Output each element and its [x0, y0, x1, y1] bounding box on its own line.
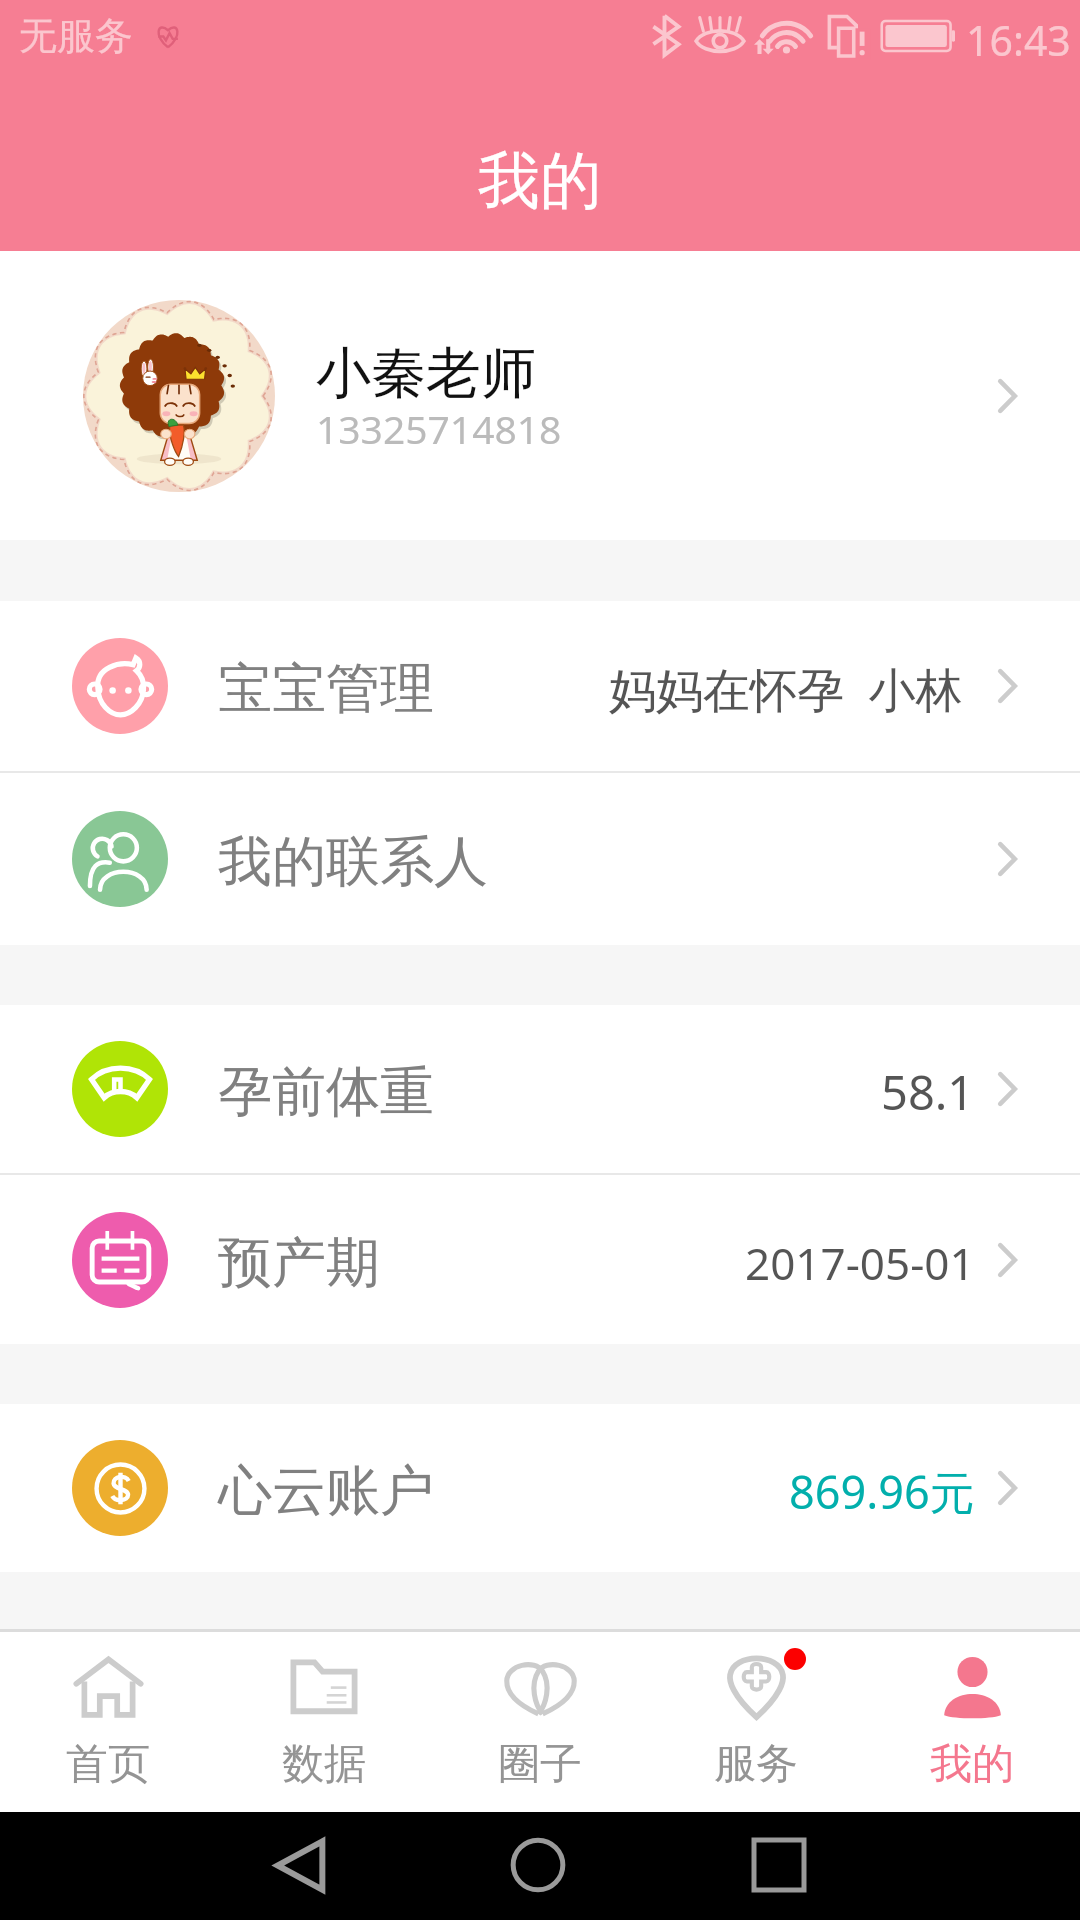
button[interactable]: 首页: [0, 1632, 216, 1812]
button[interactable]: 服务: [648, 1632, 864, 1812]
staticText: 孕前体重: [218, 1058, 434, 1126]
staticText: 妈妈在怀孕 小林: [609, 657, 963, 721]
button[interactable]: Home: [493, 1820, 583, 1910]
button[interactable]: 心云账户: [0, 1404, 1080, 1572]
staticText: 无服务: [19, 12, 133, 60]
staticText: 我的: [478, 142, 602, 220]
staticText: 2017-05-01: [745, 1233, 975, 1293]
staticText: 数据: [282, 1738, 366, 1791]
button[interactable]: 孕前体重: [0, 1005, 1080, 1173]
staticText: 小秦老师: [316, 339, 536, 408]
button[interactable]: Back: [255, 1820, 345, 1910]
staticText: 869.96元: [789, 1461, 975, 1522]
button[interactable]: 小秦老师: [0, 251, 1080, 540]
staticText: 13325714818: [316, 402, 562, 455]
button[interactable]: 我的: [864, 1632, 1080, 1812]
staticText: 16:43: [966, 12, 1071, 68]
staticText: 首页: [66, 1738, 150, 1791]
button[interactable]: Recent apps: [734, 1820, 824, 1910]
button[interactable]: 我的联系人: [0, 773, 1080, 945]
button[interactable]: 预产期: [0, 1175, 1080, 1344]
staticText: 心云账户: [218, 1457, 434, 1525]
staticText: 58.1: [881, 1060, 975, 1124]
staticText: 宝宝管理: [218, 655, 434, 723]
button[interactable]: 圈子: [432, 1632, 648, 1812]
staticText: 圈子: [498, 1738, 582, 1791]
staticText: 预产期: [218, 1229, 380, 1297]
button[interactable]: 数据: [216, 1632, 432, 1812]
staticText: 我的联系人: [218, 828, 488, 896]
staticText: 服务: [714, 1738, 798, 1791]
button[interactable]: 宝宝管理: [0, 601, 1080, 771]
staticText: 我的: [930, 1738, 1014, 1791]
